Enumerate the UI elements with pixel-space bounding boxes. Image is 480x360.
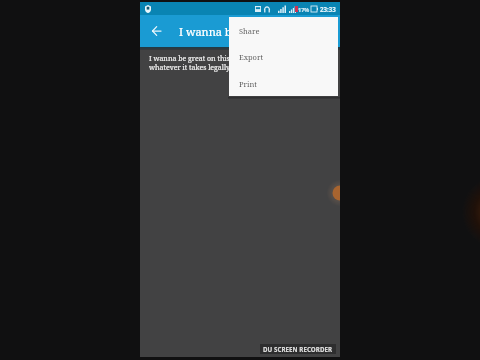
staticText: Export bbox=[239, 52, 264, 62]
button[interactable]: Back bbox=[143, 18, 169, 44]
staticText: Print bbox=[239, 79, 257, 89]
staticText: I wanna be great on this whatever it tak… bbox=[149, 54, 231, 72]
staticText: I wanna be great bbox=[179, 24, 268, 39]
button[interactable]: Share bbox=[229, 17, 338, 44]
button[interactable]: Screen recorder bbox=[325, 178, 340, 208]
button[interactable]: Print bbox=[229, 71, 338, 96]
staticText: 17% bbox=[298, 6, 310, 13]
staticText: 23:33 bbox=[320, 5, 336, 13]
button[interactable]: Export bbox=[229, 43, 338, 70]
staticText: Share bbox=[239, 26, 260, 36]
staticText: DU SCREEN RECORDER bbox=[263, 345, 333, 353]
